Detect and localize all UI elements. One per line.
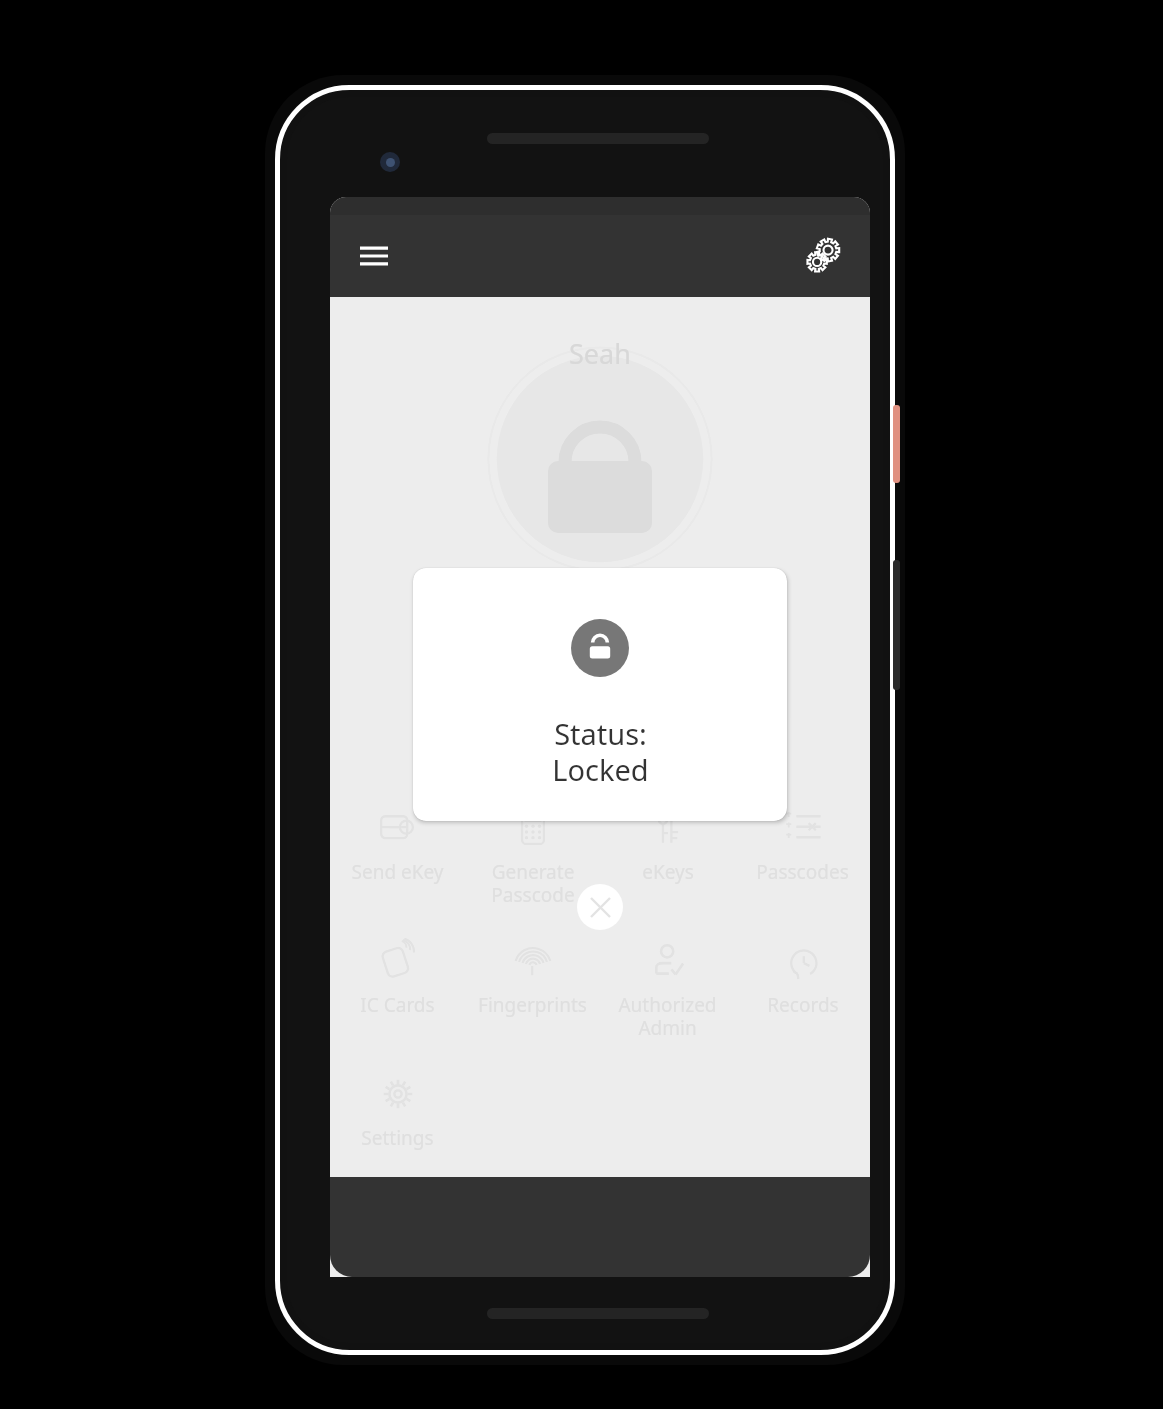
button[interactable]: Generate Passcode [465, 805, 600, 910]
button[interactable]: Status: Locked [413, 568, 787, 821]
button[interactable]: Settings [798, 231, 848, 281]
staticText: Generate Passcode [491, 859, 575, 908]
staticText: Fingerprints [478, 992, 587, 1018]
staticText: Seah [569, 335, 631, 372]
button[interactable]: Send eKey [330, 805, 465, 887]
staticText: Authorized Admin [618, 992, 717, 1041]
button[interactable]: Menu [352, 234, 396, 278]
staticText: IC Cards [360, 992, 435, 1018]
staticText: eKeys [642, 859, 694, 885]
staticText: Send eKey [351, 859, 444, 885]
staticText: Settings [361, 1125, 434, 1151]
staticText: Passcodes [756, 859, 849, 885]
button[interactable]: Close [577, 884, 623, 930]
staticText: Records [767, 992, 839, 1018]
button[interactable]: Authorized Admin [600, 938, 735, 1043]
staticText: Status: Locked [552, 714, 649, 790]
button[interactable]: Fingerprints [465, 938, 600, 1020]
button[interactable]: eKeys [600, 805, 735, 887]
button[interactable]: Passcodes [735, 805, 870, 887]
